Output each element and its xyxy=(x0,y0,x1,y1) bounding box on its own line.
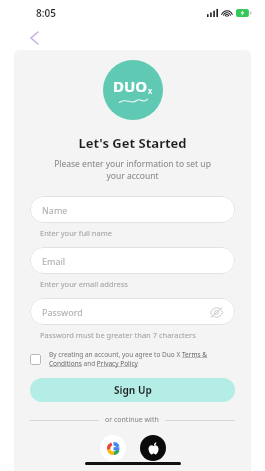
staticText: DUO xyxy=(113,76,148,96)
staticText: or continue with xyxy=(105,415,159,425)
button[interactable]: Password xyxy=(30,298,235,325)
staticText: Let's Get Started xyxy=(78,134,187,152)
staticText: Email xyxy=(42,255,66,267)
button[interactable]: Sign up with Apple xyxy=(140,435,166,461)
staticText: Please enter your information to set up … xyxy=(44,158,221,182)
staticText: x xyxy=(148,85,153,96)
button[interactable]: By creating an account, you agree to Duo… xyxy=(30,350,235,368)
button[interactable]: Name xyxy=(30,196,235,223)
staticText: By creating an account, you agree to Duo… xyxy=(49,350,235,368)
staticText: 8:05 xyxy=(36,6,56,20)
button[interactable]: Sign Up xyxy=(30,378,235,402)
staticText: Enter your full name xyxy=(40,228,112,238)
staticText: Password xyxy=(42,306,83,318)
staticText: Enter your email address xyxy=(40,279,128,289)
staticText: Password must be greater than 7 characte… xyxy=(40,330,196,340)
button[interactable]: Show password xyxy=(209,305,223,319)
button[interactable]: Back xyxy=(24,28,44,48)
button[interactable]: Sign up with Google xyxy=(100,435,126,461)
button[interactable]: Email xyxy=(30,247,235,274)
staticText: Sign Up xyxy=(114,383,152,397)
staticText: Name xyxy=(42,204,68,216)
